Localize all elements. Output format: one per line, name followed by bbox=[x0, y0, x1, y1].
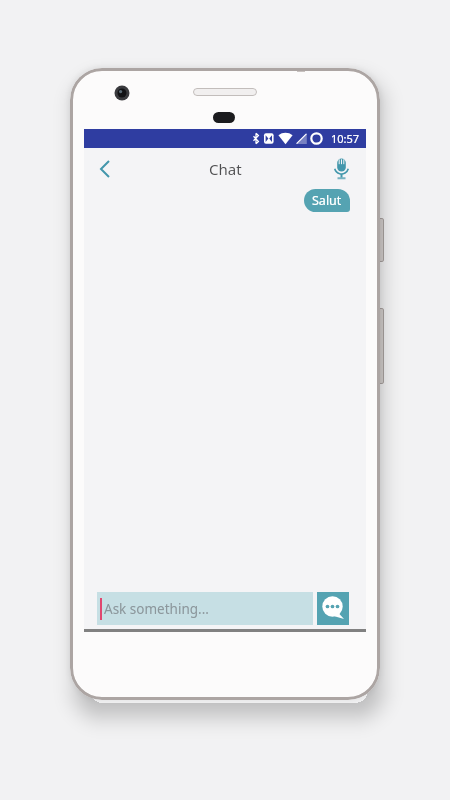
button[interactable]: Salut bbox=[304, 189, 350, 212]
staticText: Salut bbox=[312, 192, 342, 209]
button[interactable]: Ask something... bbox=[97, 592, 313, 625]
staticText: Chat bbox=[209, 159, 242, 179]
staticText: Ask something... bbox=[104, 600, 209, 618]
button[interactable] bbox=[96, 158, 114, 180]
button[interactable] bbox=[317, 592, 349, 625]
staticText: 10:57 bbox=[331, 131, 360, 146]
button[interactable] bbox=[333, 157, 350, 181]
